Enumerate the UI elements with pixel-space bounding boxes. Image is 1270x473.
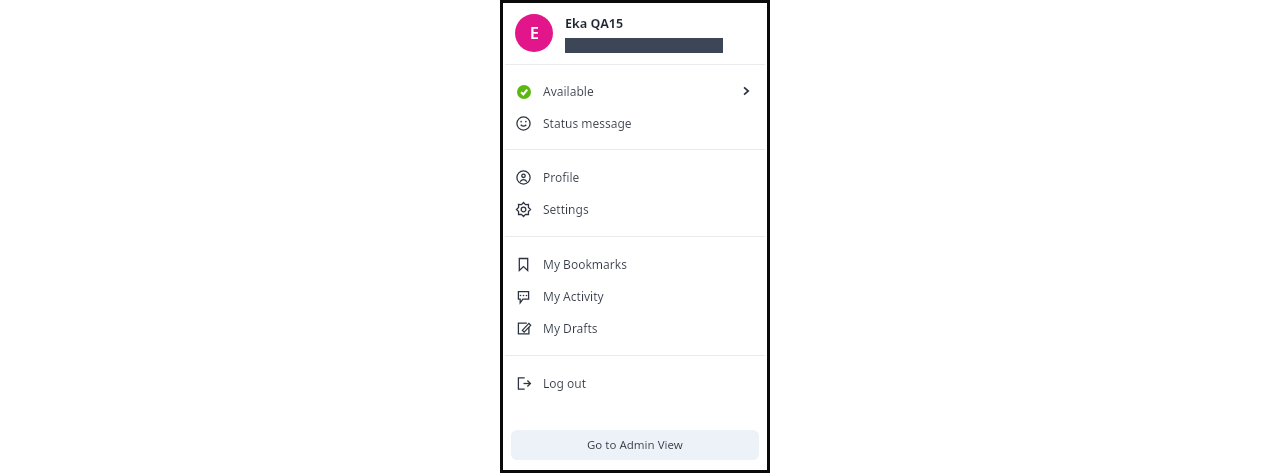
staticText: Status message [543,115,632,131]
button[interactable]: Log out [503,367,767,399]
staticText: Log out [543,375,587,391]
button[interactable]: My Bookmarks [503,248,767,280]
button[interactable]: My Activity [503,280,767,312]
button[interactable]: Go to Admin View [511,430,759,460]
staticText: E [530,22,539,44]
staticText: My Bookmarks [543,256,627,272]
staticText: My Activity [543,288,604,304]
other: Expand availability [739,84,753,98]
button[interactable]: Status message [503,107,767,139]
button[interactable]: E [503,3,767,64]
staticText: Eka QA15 [565,15,624,32]
button[interactable]: Settings [503,193,767,225]
button[interactable]: Profile [503,161,767,193]
staticText: My Drafts [543,320,598,336]
staticText: Settings [543,201,589,217]
staticText: Profile [543,169,580,185]
button[interactable]: Available [503,75,767,107]
button[interactable]: My Drafts [503,312,767,344]
staticText: Go to Admin View [587,437,683,453]
staticText: Available [543,83,594,99]
